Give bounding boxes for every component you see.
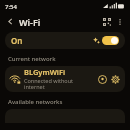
staticText: 7:54 <box>5 3 17 11</box>
staticText: Wi-Fi <box>19 16 41 28</box>
button[interactable]: Scan QR code <box>100 15 114 29</box>
staticText: On <box>11 35 23 46</box>
button[interactable]: On <box>5 32 125 49</box>
staticText: Available networks <box>8 98 63 106</box>
button[interactable]: More options <box>114 16 126 28</box>
staticText: Connected without internet <box>24 77 74 91</box>
button[interactable]: Network settings <box>109 73 122 86</box>
button[interactable]: Back <box>4 15 17 28</box>
staticText: Current network <box>8 55 56 63</box>
button[interactable]: Network information <box>96 73 109 86</box>
button[interactable]: BLGymWiFi <box>5 66 125 92</box>
staticText: BLGymWiFi <box>24 67 66 77</box>
button[interactable]: Wi-Fi toggle <box>102 36 119 45</box>
